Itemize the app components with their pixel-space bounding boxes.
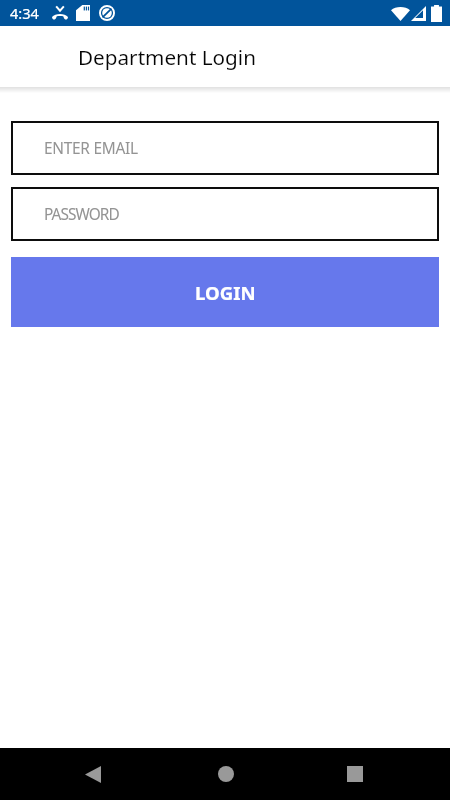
staticText: 4:34: [10, 3, 39, 23]
button[interactable]: Recent apps: [293, 748, 416, 800]
button[interactable]: LOGIN: [11, 257, 439, 327]
staticText: LOGIN: [195, 280, 256, 305]
button[interactable]: Back: [28, 748, 158, 800]
button[interactable]: Home: [158, 748, 293, 800]
staticText: Department Login: [78, 43, 256, 71]
staticText: ENTER EMAIL: [44, 138, 138, 159]
button[interactable]: PASSWORD: [11, 187, 439, 241]
staticText: PASSWORD: [44, 204, 119, 225]
button[interactable]: ENTER EMAIL: [11, 121, 439, 175]
